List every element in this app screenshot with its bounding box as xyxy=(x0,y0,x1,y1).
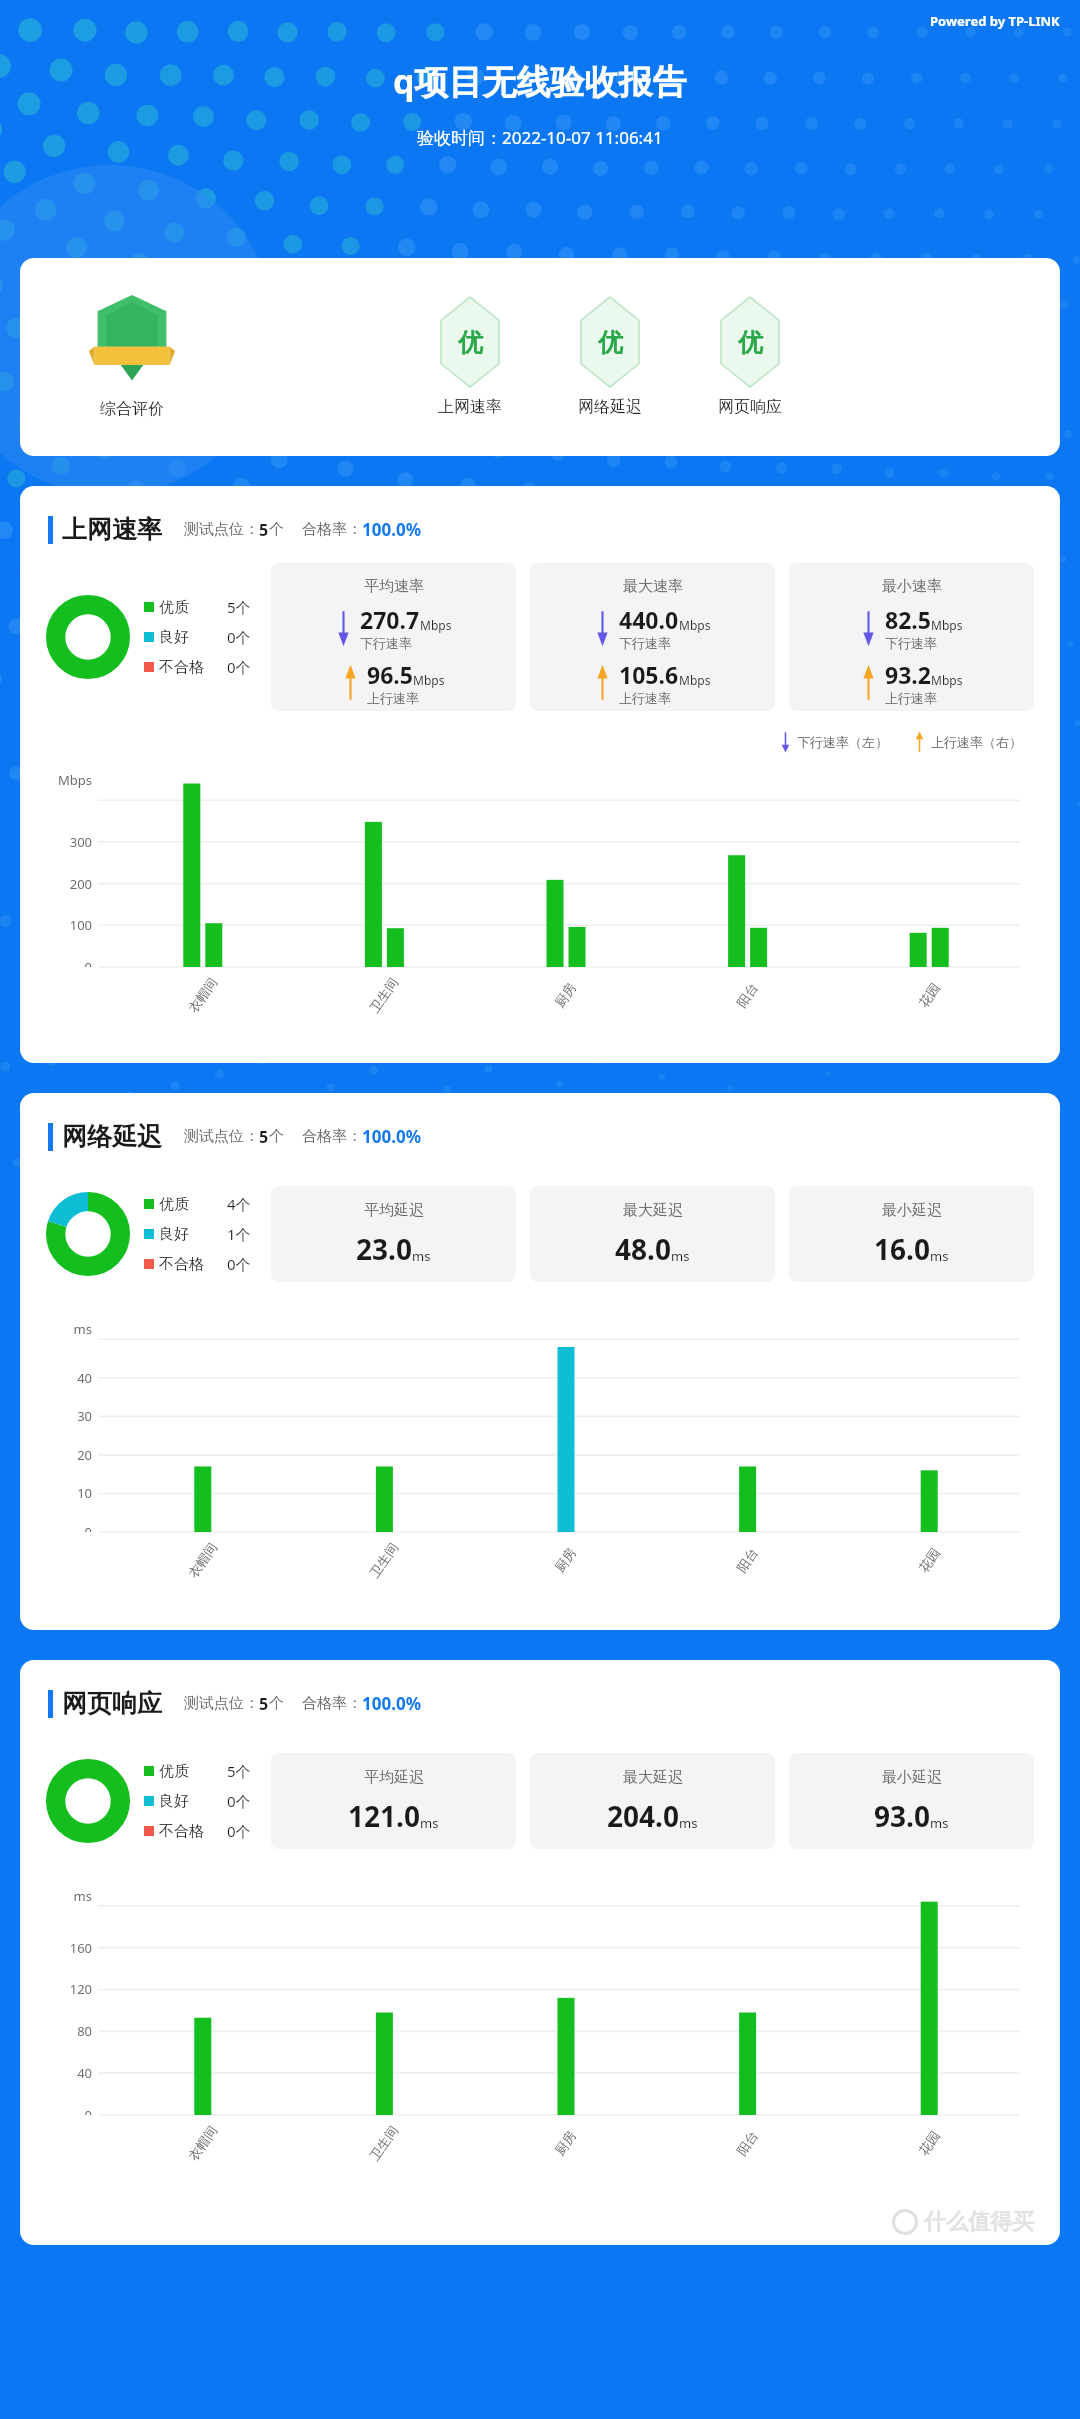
staticText: Mbps xyxy=(679,672,711,688)
staticText: 0 xyxy=(20,1523,92,1532)
staticText: 300 xyxy=(20,833,92,851)
staticText: 16.0 xyxy=(874,1230,930,1268)
staticText: 0个 xyxy=(227,1821,251,1841)
staticText: 合格率： xyxy=(302,520,362,539)
button[interactable]: 最小延迟 xyxy=(789,1186,1034,1282)
staticText: 下行速率 xyxy=(885,635,937,651)
button[interactable]: 平均延迟 xyxy=(271,1186,516,1282)
staticText: 优 xyxy=(738,327,763,358)
staticText: 下行速率 xyxy=(619,635,671,651)
staticText: 下行速率 xyxy=(360,635,412,651)
button[interactable]: 优 xyxy=(718,297,782,417)
button[interactable]: 最小延迟 xyxy=(789,1753,1034,1849)
staticText: 上网速率 xyxy=(438,397,502,417)
staticText: 良好 xyxy=(159,1225,189,1244)
staticText: Mbps xyxy=(931,617,963,633)
button[interactable]: 综合评价 优 xyxy=(92,295,172,419)
staticText: Mbps xyxy=(20,771,92,789)
staticText: 卫生间 xyxy=(366,1539,401,1580)
staticText: 最大延迟 xyxy=(623,1201,683,1220)
staticText: 100.0% xyxy=(362,1692,422,1715)
staticText: 个 xyxy=(269,1127,284,1146)
staticText: 105.6 xyxy=(619,659,679,690)
staticText: 96.5 xyxy=(367,659,413,690)
staticText: ms xyxy=(679,1814,698,1832)
staticText: 30 xyxy=(20,1407,92,1425)
button[interactable]: 最小速率 xyxy=(789,563,1034,711)
staticText: 优质 xyxy=(159,1195,189,1214)
staticText: 0个 xyxy=(227,1791,251,1811)
staticText: 衣帽间 xyxy=(185,974,220,1015)
staticText: 优 xyxy=(598,327,623,358)
staticText: 什么值得买 xyxy=(924,2208,1034,2236)
staticText: 最小速率 xyxy=(882,577,942,596)
staticText: 合格率： xyxy=(302,1694,362,1713)
other: 结果占比环形图 xyxy=(46,1192,130,1276)
staticText: 82.5 xyxy=(885,604,931,635)
staticText: 网页响应 xyxy=(62,1688,162,1719)
button[interactable]: 平均速率 xyxy=(271,563,516,711)
button[interactable]: 最大速率 xyxy=(530,563,775,711)
staticText: 40 xyxy=(20,1369,92,1387)
staticText: 花园 xyxy=(915,2128,943,2158)
staticText: 平均延迟 xyxy=(364,1768,424,1787)
staticText: 良好 xyxy=(159,1792,189,1811)
staticText: 平均延迟 xyxy=(364,1201,424,1220)
staticText: 花园 xyxy=(915,1545,943,1575)
staticText: q项目无线验收报告 xyxy=(393,58,687,104)
staticText: 10 xyxy=(20,1484,92,1502)
staticText: ms xyxy=(20,1320,92,1338)
staticText: 5个 xyxy=(227,1761,251,1781)
staticText: 个 xyxy=(269,1694,284,1713)
staticText: 不合格 xyxy=(159,1822,204,1841)
staticText: 测试点位： xyxy=(184,1694,259,1713)
button[interactable]: 最大延迟 xyxy=(530,1186,775,1282)
button[interactable]: Powered by TP-LINK xyxy=(930,12,1060,30)
staticText: 4个 xyxy=(227,1194,251,1214)
staticText: Mbps xyxy=(679,617,711,633)
staticText: 卫生间 xyxy=(366,2122,401,2163)
other: 结果占比环形图 xyxy=(46,1759,130,1843)
staticText: 1个 xyxy=(227,1224,251,1244)
button[interactable]: 优 xyxy=(578,297,642,417)
staticText: 平均速率 xyxy=(364,577,424,596)
staticText: 0 xyxy=(20,958,92,967)
staticText: 120 xyxy=(20,1980,92,1998)
staticText: ms xyxy=(671,1247,690,1265)
staticText: 0 xyxy=(20,2106,92,2115)
staticText: 衣帽间 xyxy=(185,1539,220,1580)
staticText: 厨房 xyxy=(551,980,579,1010)
staticText: 0个 xyxy=(227,627,251,647)
staticText: 270.7 xyxy=(360,604,420,635)
staticText: ms xyxy=(930,1247,949,1265)
staticText: 93.2 xyxy=(885,659,931,690)
staticText: 上行速率 xyxy=(619,690,671,706)
staticText: 优 xyxy=(458,327,483,358)
staticText: 23.0 xyxy=(356,1230,412,1268)
staticText: 阳台 xyxy=(733,980,761,1010)
staticText: 验收时间：2022-10-07 11:06:41 xyxy=(417,126,663,149)
staticText: 80 xyxy=(20,2022,92,2040)
staticText: 160 xyxy=(20,1939,92,1957)
staticText: 不合格 xyxy=(159,658,204,677)
staticText: 0个 xyxy=(227,657,251,677)
other: 结果占比环形图 xyxy=(46,595,130,679)
staticText: 测试点位： xyxy=(184,520,259,539)
staticText: ms xyxy=(420,1814,439,1832)
button[interactable]: 最大延迟 xyxy=(530,1753,775,1849)
staticText: 100 xyxy=(20,916,92,934)
staticText: ms xyxy=(930,1814,949,1832)
staticText: 综合评价 xyxy=(100,399,164,419)
button[interactable]: 优 xyxy=(438,297,502,417)
button[interactable]: 平均延迟 xyxy=(271,1753,516,1849)
staticText: 阳台 xyxy=(733,1545,761,1575)
staticText: 20 xyxy=(20,1446,92,1464)
staticText: 上行速率 xyxy=(367,690,419,706)
staticText: 网页响应 xyxy=(718,397,782,417)
staticText: 0个 xyxy=(227,1254,251,1274)
staticText: 上行速率 xyxy=(885,690,937,706)
staticText: 5 xyxy=(259,1126,269,1148)
staticText: 5 xyxy=(259,519,269,541)
staticText: 121.0 xyxy=(348,1797,420,1835)
staticText: 衣帽间 xyxy=(185,2122,220,2163)
